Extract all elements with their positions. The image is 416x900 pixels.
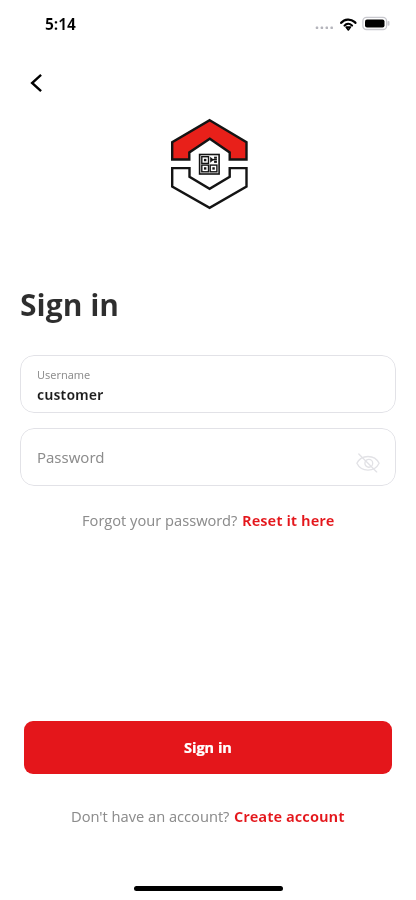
button[interactable]: Username	[20, 355, 396, 413]
staticText: Username	[37, 367, 91, 382]
staticText: Don't have an account?	[71, 806, 234, 826]
button[interactable]: Sign in	[24, 721, 392, 774]
staticText: 5:14	[45, 13, 76, 34]
button[interactable]: Password	[20, 428, 396, 486]
button[interactable]: Create account	[234, 806, 345, 826]
staticText: customer	[37, 385, 104, 404]
button[interactable]: Show password	[350, 445, 386, 481]
staticText: Sign in	[20, 284, 120, 325]
staticText: Forgot your password?	[82, 510, 242, 530]
staticText: Sign in	[184, 738, 232, 758]
staticText: Password	[37, 447, 105, 467]
button[interactable]: Reset it here	[242, 510, 335, 530]
button[interactable]: Back	[13, 60, 58, 105]
